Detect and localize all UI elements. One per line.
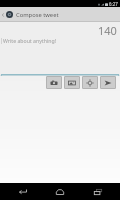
staticText: 140 [98,23,117,38]
staticText: Write about anything! [3,37,57,44]
button[interactable]: Recent apps [83,183,113,200]
button[interactable]: Home [45,183,75,200]
button[interactable]: Back [8,183,38,200]
staticText: 6:27 [109,1,118,7]
button[interactable]: Send [100,76,116,89]
button[interactable]: Camera [46,76,62,89]
button[interactable]: Add location [82,76,98,89]
button[interactable]: Navigate up [0,7,5,22]
staticText: Compose tweet [16,11,59,19]
button[interactable]: Add photo [64,76,80,89]
